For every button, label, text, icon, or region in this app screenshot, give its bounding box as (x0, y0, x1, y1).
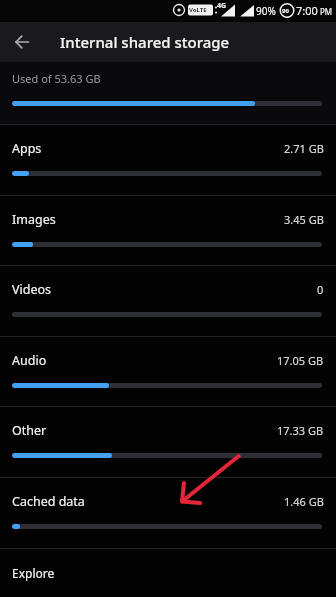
staticText: 17.05 GB (277, 353, 324, 368)
button[interactable]: Other (0, 406, 336, 477)
staticText: 0 (317, 282, 324, 297)
staticText: 1.46 GB (284, 494, 324, 509)
staticText: VoLTE (189, 6, 207, 14)
staticText: 3.45 GB (284, 212, 324, 227)
staticText: 7:00 PM (296, 3, 332, 18)
staticText: Used of 53.63 GB (12, 71, 101, 86)
button[interactable] (6, 26, 38, 58)
staticText: 2.71 GB (284, 141, 324, 156)
staticText: Apps (12, 140, 42, 157)
staticText: Other (12, 422, 47, 439)
staticText: Audio (12, 352, 47, 369)
staticText: Internal shared storage (60, 32, 230, 52)
staticText: Images (12, 211, 56, 228)
staticText: 17.33 GB (277, 423, 324, 438)
button[interactable]: Videos (0, 265, 336, 336)
button[interactable]: Apps (0, 124, 336, 195)
staticText: Cached data (12, 493, 85, 510)
button[interactable]: Audio (0, 336, 336, 407)
staticText: 4G (217, 1, 227, 11)
staticText: 90% (256, 4, 276, 18)
staticText: Explore (12, 565, 55, 581)
button[interactable]: Cached data (0, 477, 336, 548)
button[interactable]: Explore (0, 548, 336, 597)
staticText: 90 (282, 7, 289, 15)
staticText: Videos (12, 281, 52, 298)
button[interactable]: Images (0, 195, 336, 266)
